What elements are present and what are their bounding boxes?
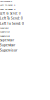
staticText: Supervisor: [0, 38, 14, 42]
staticText: Left To Send: 0: [0, 7, 15, 11]
staticText: Left To Send: 0: [0, 21, 24, 26]
staticText: Supervisor: [0, 48, 17, 52]
staticText: Left To Send: 0: [0, 0, 12, 2]
staticText: Supervisor: [0, 30, 10, 33]
staticText: Supervisor: [0, 34, 10, 37]
staticText: Left To Send: 0: [0, 16, 23, 20]
staticText: Supervisor: [0, 27, 9, 29]
staticText: Supervisor: [0, 43, 15, 47]
staticText: Left To Send: 0: [0, 3, 15, 6]
staticText: Left To Send: 0: [0, 12, 21, 15]
